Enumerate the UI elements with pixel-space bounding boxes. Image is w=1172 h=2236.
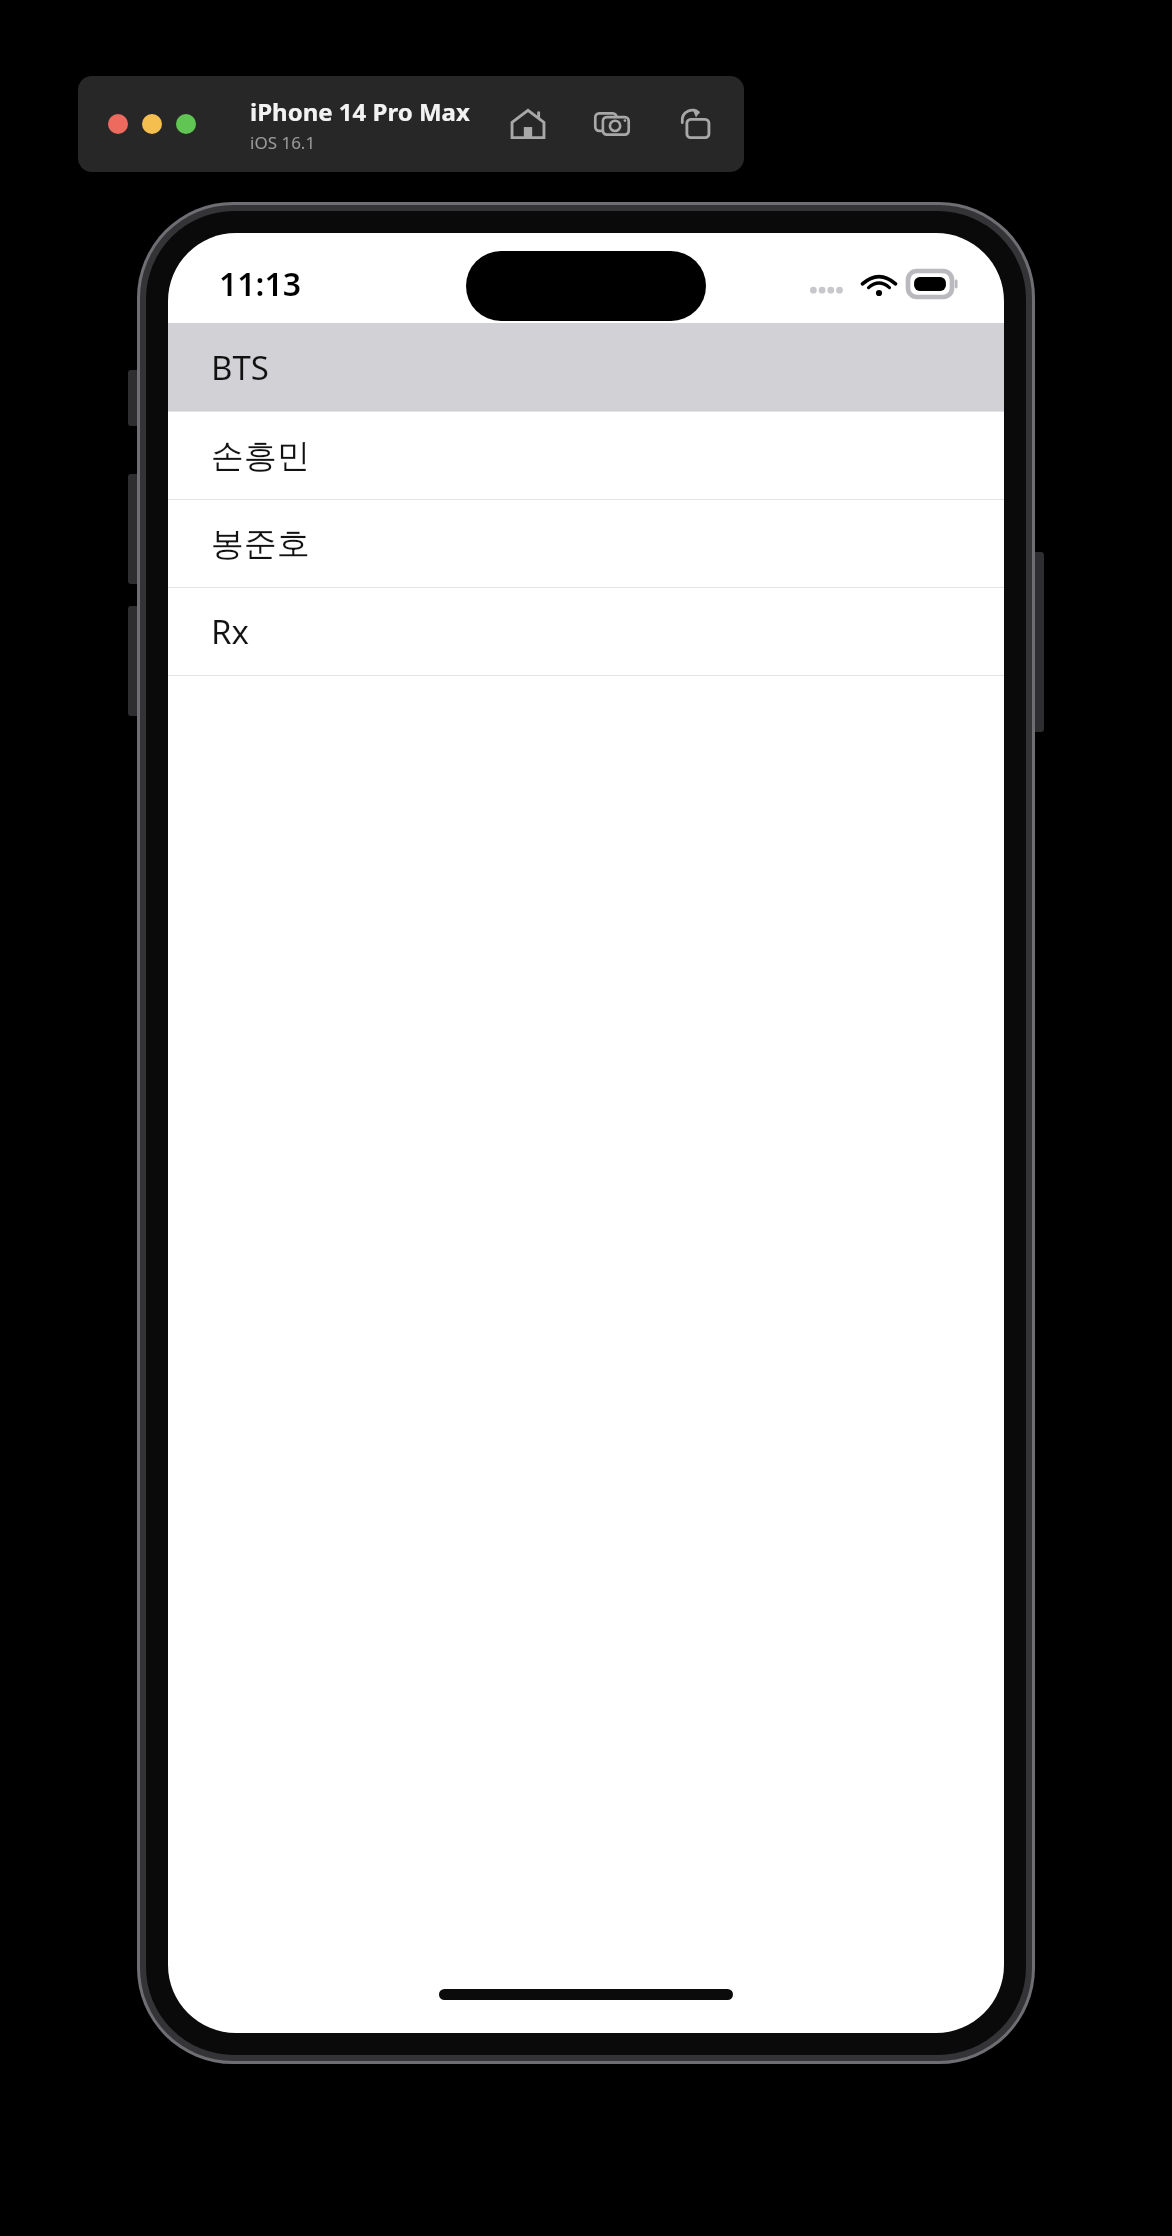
staticText: BTS — [211, 345, 269, 390]
button[interactable]: Zoom — [176, 114, 196, 134]
button[interactable]: Home — [502, 98, 554, 150]
button[interactable]: Minimize — [142, 114, 162, 134]
staticText: 11:13 — [219, 262, 302, 306]
staticText: 손흥민 — [211, 435, 310, 477]
staticText: Rx — [211, 609, 249, 654]
staticText: iPhone 14 Pro Max — [250, 95, 470, 128]
button[interactable]: BTS — [168, 323, 1004, 411]
button[interactable]: Close — [108, 114, 128, 134]
button[interactable]: 손흥민 — [168, 411, 1004, 499]
staticText: iOS 16.1 — [250, 131, 316, 154]
button[interactable]: Screenshot — [586, 98, 638, 150]
button[interactable]: Rx — [168, 587, 1004, 675]
staticText: 봉준호 — [211, 523, 310, 565]
button[interactable]: Rotate — [670, 98, 722, 150]
button[interactable]: 봉준호 — [168, 499, 1004, 587]
